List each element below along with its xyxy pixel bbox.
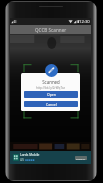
staticText: Scanned [42, 79, 60, 85]
staticText: Cancel [46, 102, 57, 107]
staticText: Lords Mobile [20, 153, 40, 157]
staticText: http://bit.ly/2rWqTxz [36, 86, 65, 90]
staticText: INSTALL [76, 157, 86, 160]
staticText: Open [47, 92, 56, 97]
other: Scanned link [45, 64, 58, 77]
staticText: QCCB Scanner [35, 27, 67, 33]
staticText: 12:30 [79, 19, 90, 25]
button[interactable]: INSTALL [75, 156, 87, 160]
button[interactable]: Cancel [24, 101, 78, 107]
button[interactable]: Lords Mobile [10, 151, 91, 164]
button[interactable]: Open [24, 91, 78, 98]
staticText: 4.5 [20, 158, 24, 162]
